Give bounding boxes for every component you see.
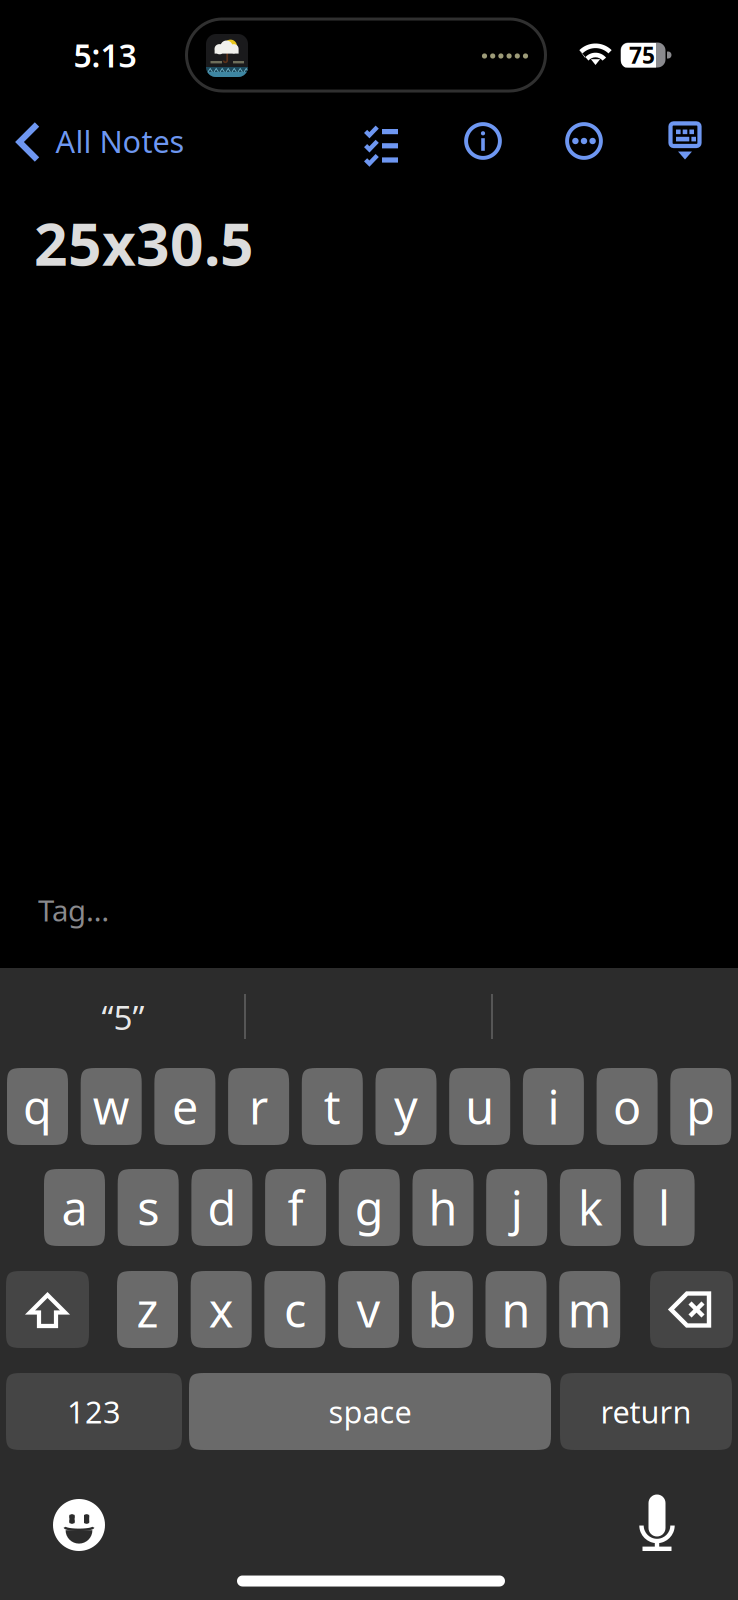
button[interactable]: space: [189, 1373, 551, 1450]
staticText: 5:13: [73, 34, 136, 76]
staticText: “5”: [101, 995, 144, 1039]
staticText: v: [357, 1278, 381, 1340]
button[interactable]: h: [412, 1169, 473, 1246]
staticText: f: [288, 1176, 304, 1238]
button[interactable]: o: [597, 1068, 658, 1145]
staticText: w: [93, 1075, 130, 1137]
staticText: k: [578, 1176, 603, 1238]
button[interactable]: a: [44, 1169, 105, 1246]
button[interactable]: Dictation: [624, 1492, 690, 1558]
button[interactable]: c: [264, 1271, 325, 1348]
staticText: t: [324, 1075, 341, 1137]
staticText: u: [465, 1075, 494, 1137]
staticText: z: [136, 1278, 158, 1340]
staticText: 25x30.5: [34, 204, 254, 282]
staticText: p: [686, 1075, 715, 1137]
button[interactable]: 123: [6, 1373, 182, 1450]
button[interactable]: e: [154, 1068, 215, 1145]
button[interactable]: v: [338, 1271, 399, 1348]
button[interactable]: y: [375, 1068, 436, 1145]
button[interactable]: i: [523, 1068, 584, 1145]
staticText: i: [547, 1075, 559, 1137]
staticText: 123: [67, 1391, 121, 1432]
button[interactable]: x: [191, 1271, 252, 1348]
staticText: o: [613, 1075, 641, 1137]
button[interactable]: r: [228, 1068, 289, 1145]
button[interactable]: Tag…: [38, 887, 138, 933]
staticText: r: [249, 1075, 268, 1137]
button[interactable]: w: [81, 1068, 142, 1145]
button[interactable]: return: [560, 1373, 732, 1450]
staticText: All Notes: [55, 121, 184, 161]
button[interactable]: Hide keyboard: [648, 103, 722, 179]
staticText: Tag…: [38, 890, 109, 929]
button[interactable]: Checklist: [344, 103, 418, 179]
staticText: l: [658, 1176, 670, 1238]
button[interactable]: b: [412, 1271, 473, 1348]
staticText: a: [61, 1176, 87, 1238]
staticText: s: [137, 1176, 159, 1238]
button[interactable]: t: [302, 1068, 363, 1145]
button[interactable]: z: [117, 1271, 178, 1348]
staticText: return: [600, 1391, 691, 1432]
button[interactable]: p: [670, 1068, 731, 1145]
button[interactable]: q: [7, 1068, 68, 1145]
button[interactable]: g: [339, 1169, 400, 1246]
button[interactable]: Shift: [6, 1271, 89, 1348]
button[interactable]: s: [118, 1169, 179, 1246]
staticText: y: [394, 1075, 418, 1137]
button[interactable]: All Notes: [0, 104, 200, 180]
button[interactable]: m: [559, 1271, 620, 1348]
staticText: h: [428, 1176, 457, 1238]
staticText: c: [284, 1278, 306, 1340]
button[interactable]: f: [265, 1169, 326, 1246]
staticText: g: [355, 1176, 384, 1238]
button[interactable]: Emoji keyboard: [46, 1492, 112, 1558]
staticText: b: [428, 1278, 457, 1340]
staticText: m: [568, 1278, 612, 1340]
staticText: n: [501, 1278, 530, 1340]
button[interactable]: l: [634, 1169, 695, 1246]
staticText: e: [172, 1075, 198, 1137]
button[interactable]: More options: [547, 103, 621, 179]
button[interactable]: Note information: [446, 103, 520, 179]
staticText: 75: [629, 40, 655, 70]
staticText: d: [207, 1176, 236, 1238]
staticText: space: [328, 1391, 411, 1432]
button[interactable]: j: [486, 1169, 547, 1246]
button[interactable]: n: [485, 1271, 546, 1348]
staticText: q: [23, 1075, 52, 1137]
button[interactable]: u: [449, 1068, 510, 1145]
staticText: x: [209, 1278, 234, 1340]
button[interactable]: k: [560, 1169, 621, 1246]
staticText: j: [511, 1176, 523, 1238]
button[interactable]: d: [191, 1169, 252, 1246]
button[interactable]: Delete: [650, 1271, 733, 1348]
